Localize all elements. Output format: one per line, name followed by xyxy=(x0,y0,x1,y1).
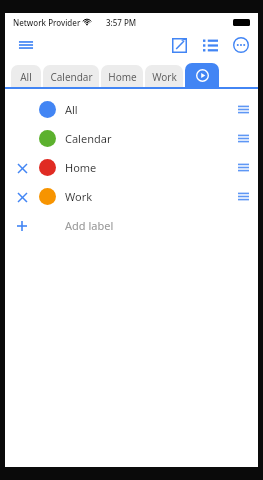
button[interactable]: Remove Home xyxy=(10,156,34,180)
button[interactable]: Reorder All xyxy=(228,95,258,124)
button[interactable]: Remove Home xyxy=(5,153,258,182)
button[interactable]: Home xyxy=(101,65,143,89)
staticText: Network Provider xyxy=(13,17,81,28)
button[interactable]: Reorder Work xyxy=(228,182,258,211)
button[interactable]: Remove Work xyxy=(10,185,34,209)
button[interactable]: More options xyxy=(228,32,254,58)
staticText: Calendar xyxy=(65,131,112,146)
button[interactable]: Compose xyxy=(166,32,192,58)
staticText: All xyxy=(20,70,32,84)
button[interactable]: Reorder Home xyxy=(228,153,258,182)
button[interactable]: Add label xyxy=(5,211,258,240)
button[interactable]: Remove Work xyxy=(5,182,258,211)
button[interactable]: Calendar xyxy=(5,124,258,153)
staticText: Calendar xyxy=(50,70,93,84)
staticText: All xyxy=(65,102,78,117)
staticText: Home xyxy=(65,160,97,175)
staticText: Home xyxy=(108,70,137,84)
staticText: Add label xyxy=(65,218,114,233)
staticText: Work xyxy=(65,189,93,204)
staticText: Work xyxy=(152,70,177,84)
button[interactable]: Calendar xyxy=(43,65,99,89)
button[interactable]: All xyxy=(11,65,41,89)
staticText: 3:57 PM xyxy=(106,17,137,28)
button[interactable]: Menu xyxy=(13,32,39,58)
button[interactable]: Work xyxy=(145,65,183,89)
button[interactable]: Snooze tab xyxy=(185,63,219,89)
button[interactable]: All xyxy=(5,95,258,124)
button[interactable]: List view xyxy=(197,32,223,58)
button[interactable]: Reorder Calendar xyxy=(228,124,258,153)
